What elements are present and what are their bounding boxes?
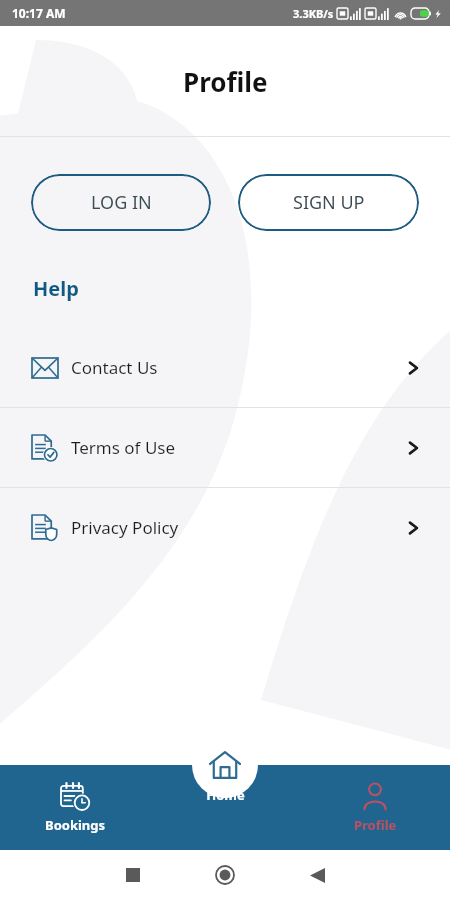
button[interactable]: LOG IN xyxy=(31,174,211,231)
staticText: Bookings xyxy=(45,816,106,834)
staticText: Home xyxy=(206,786,245,804)
button[interactable]: Profile xyxy=(300,765,450,850)
button[interactable]: Bookings xyxy=(0,765,150,850)
button[interactable]: Home xyxy=(192,732,258,798)
staticText: Privacy Policy xyxy=(71,516,179,539)
staticText: LOG IN xyxy=(91,190,152,215)
staticText: Contact Us xyxy=(71,356,158,379)
button[interactable]: Contact Us xyxy=(0,328,450,407)
staticText: Profile xyxy=(354,816,397,834)
staticText: SIGN UP xyxy=(293,190,365,215)
staticText: Profile xyxy=(183,64,268,99)
button[interactable]: Privacy Policy xyxy=(0,488,450,567)
staticText: Terms of Use xyxy=(71,436,176,459)
staticText: 3.3KB/s xyxy=(293,6,334,21)
button[interactable]: Terms of Use xyxy=(0,408,450,487)
button[interactable]: SIGN UP xyxy=(238,174,419,231)
staticText: 10:17 AM xyxy=(12,5,66,21)
staticText: Help xyxy=(33,275,79,302)
